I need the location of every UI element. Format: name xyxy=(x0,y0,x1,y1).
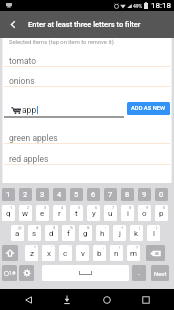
button[interactable]: red apples xyxy=(0,144,174,165)
staticText: red apples xyxy=(9,154,49,164)
button[interactable]: g xyxy=(79,225,92,241)
button[interactable]: o xyxy=(138,205,151,221)
button[interactable]: f xyxy=(62,225,75,241)
staticText: j xyxy=(119,229,121,238)
staticText: x xyxy=(47,249,51,258)
button[interactable]: m xyxy=(127,245,140,261)
button[interactable]: l xyxy=(147,225,160,241)
button[interactable]: i xyxy=(121,205,134,221)
staticText: & xyxy=(87,225,90,230)
staticText: 0 xyxy=(163,205,166,210)
button[interactable]: c xyxy=(59,245,72,261)
staticText: a xyxy=(15,229,20,238)
staticText: r xyxy=(58,209,61,218)
button[interactable]: 6 xyxy=(87,188,100,201)
button[interactable]: Recent apps xyxy=(135,289,157,310)
staticText: ' xyxy=(69,245,70,250)
staticText: 5 xyxy=(74,190,79,199)
button[interactable]: Backspace xyxy=(146,245,165,261)
button[interactable]: n xyxy=(110,245,123,261)
staticText: app xyxy=(22,105,37,115)
button[interactable]: r xyxy=(53,205,66,221)
staticText: z xyxy=(30,249,34,258)
staticText: 7 xyxy=(108,190,113,199)
staticText: f xyxy=(67,229,70,238)
staticText: 8 xyxy=(125,190,130,199)
button[interactable]: 5 xyxy=(70,188,83,201)
staticText: w xyxy=(22,209,29,218)
button[interactable]: a xyxy=(11,225,24,241)
staticText: Enter at least three letters to filter xyxy=(28,20,141,29)
button[interactable]: t xyxy=(70,205,83,221)
button[interactable]: Space xyxy=(42,265,129,281)
button[interactable]: tomato xyxy=(0,47,174,67)
staticText: $ xyxy=(53,225,56,230)
button[interactable]: y xyxy=(87,205,100,221)
staticText: b xyxy=(97,249,102,258)
button[interactable]: 0 xyxy=(155,188,168,201)
button[interactable]: Symbols xyxy=(2,265,17,281)
staticText: 9 xyxy=(146,205,149,210)
button[interactable]: k xyxy=(130,225,143,241)
button[interactable]: Navigate up xyxy=(0,11,26,38)
staticText: k xyxy=(134,229,139,238)
staticText: 3 xyxy=(40,190,45,199)
button[interactable]: x xyxy=(42,245,55,261)
staticText: u xyxy=(108,209,113,218)
button[interactable]: Keyboard settings xyxy=(19,265,34,281)
button[interactable]: 3 xyxy=(36,188,49,201)
staticText: ! xyxy=(119,245,121,250)
button[interactable]: 7 xyxy=(104,188,117,201)
button[interactable]: 4 xyxy=(53,188,66,201)
button[interactable]: Next xyxy=(151,265,169,281)
button[interactable]: e xyxy=(36,205,49,221)
staticText: % xyxy=(70,225,73,230)
button[interactable]: p xyxy=(155,205,168,221)
button[interactable]: q xyxy=(2,205,15,221)
button[interactable]: Home xyxy=(96,289,118,310)
button[interactable]: s xyxy=(28,225,41,241)
staticText: d xyxy=(49,229,54,238)
staticText: s xyxy=(32,229,37,238)
staticText: v xyxy=(81,249,85,258)
staticText: 18:18 xyxy=(151,1,171,10)
button[interactable]: Back xyxy=(17,289,39,310)
button[interactable]: . xyxy=(132,265,146,281)
staticText: g xyxy=(83,229,88,238)
staticText: 1# xyxy=(9,270,16,276)
staticText: 4 xyxy=(57,190,62,199)
staticText: c xyxy=(63,249,68,258)
staticText: i xyxy=(127,209,129,218)
staticText: ; xyxy=(103,245,104,250)
button[interactable]: h xyxy=(96,225,109,241)
staticText: 3 xyxy=(44,205,47,210)
staticText: : xyxy=(86,245,87,250)
staticText: n xyxy=(114,249,119,258)
staticText: l xyxy=(153,229,155,238)
button[interactable]: 2 xyxy=(19,188,32,201)
staticText: y xyxy=(92,209,96,218)
button[interactable]: green apples xyxy=(0,124,174,144)
button[interactable]: w xyxy=(19,205,32,221)
staticText: 1 xyxy=(10,205,13,210)
staticText: 5 xyxy=(78,205,81,210)
button[interactable]: Hide keyboard xyxy=(56,289,78,310)
button[interactable]: u xyxy=(104,205,117,221)
button[interactable]: v xyxy=(76,245,89,261)
button[interactable]: 9 xyxy=(138,188,151,201)
button[interactable]: b xyxy=(93,245,106,261)
button[interactable]: 1 xyxy=(2,188,15,201)
button[interactable]: 8 xyxy=(121,188,134,201)
button[interactable]: d xyxy=(45,225,58,241)
button[interactable]: j xyxy=(113,225,126,241)
staticText: ( xyxy=(139,225,141,230)
staticText: tomato xyxy=(9,56,37,66)
button[interactable]: ADD AS NEW xyxy=(127,102,170,115)
staticText: 6 xyxy=(95,205,98,210)
staticText: m xyxy=(130,249,138,258)
staticText: Selected items (tap on item to remove it… xyxy=(9,39,114,46)
button[interactable]: Shift xyxy=(2,245,18,261)
button[interactable]: onions xyxy=(0,67,174,87)
staticText: + xyxy=(121,225,124,230)
button[interactable]: z xyxy=(25,245,38,261)
